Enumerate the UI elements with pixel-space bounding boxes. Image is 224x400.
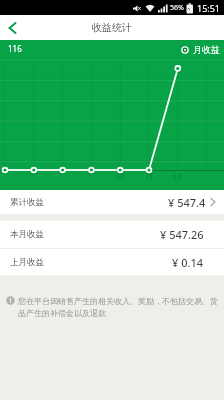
staticText: 本月收益: [10, 229, 44, 240]
button[interactable]: 本月收益: [0, 221, 224, 249]
staticText: 上月收益: [10, 257, 44, 268]
staticText: ¥ 0.14: [172, 255, 204, 270]
button[interactable]: 上月收益: [0, 249, 224, 275]
button[interactable]: 累计收益: [0, 190, 224, 214]
button[interactable]: 月收益: [181, 44, 220, 55]
staticText: 116: [8, 43, 22, 54]
staticText: 您在平台因销售产生的相关收入、奖励，不包括交易、货品产生的补偿金以及退款: [18, 296, 220, 318]
staticText: 累计收益: [10, 197, 44, 208]
staticText: 56%: [170, 3, 184, 13]
staticText: 10: [116, 172, 125, 182]
button[interactable]: [0, 15, 24, 40]
staticText: 11: [145, 172, 154, 182]
staticText: ¥ 547.26: [160, 227, 204, 242]
staticText: 12: [173, 172, 182, 182]
staticText: ¥ 547.4: [168, 195, 206, 210]
staticText: 15:51: [197, 2, 221, 14]
staticText: 收益统计: [92, 21, 132, 34]
staticText: 月收益: [193, 44, 220, 55]
